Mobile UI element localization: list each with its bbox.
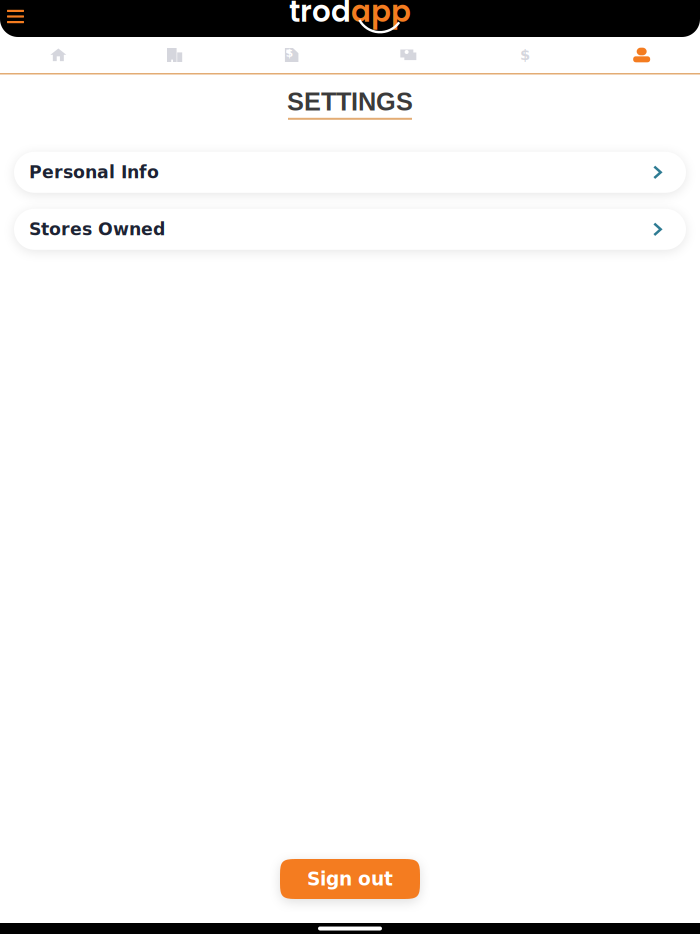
button[interactable]: Menu: [0, 0, 34, 32]
staticText: Stores Owned: [29, 219, 165, 239]
staticText: Sign out: [307, 868, 393, 890]
button[interactable]: Home: [0, 37, 117, 73]
button[interactable]: Earnings: [467, 37, 583, 73]
staticText: app: [351, 0, 411, 32]
button[interactable]: Sign out: [280, 859, 420, 899]
button[interactable]: Payments: [350, 37, 467, 73]
button[interactable]: Account: [583, 37, 700, 73]
staticText: $: [286, 47, 293, 59]
staticText: trod: [289, 0, 351, 32]
staticText: Personal Info: [29, 162, 159, 182]
button[interactable]: Stores Owned: [14, 209, 686, 250]
button[interactable]: Invoices: [233, 37, 350, 73]
button[interactable]: Stores: [117, 37, 233, 73]
staticText: SETTINGS: [287, 87, 413, 116]
button[interactable]: Personal Info: [14, 152, 686, 193]
staticText: $: [520, 46, 530, 64]
